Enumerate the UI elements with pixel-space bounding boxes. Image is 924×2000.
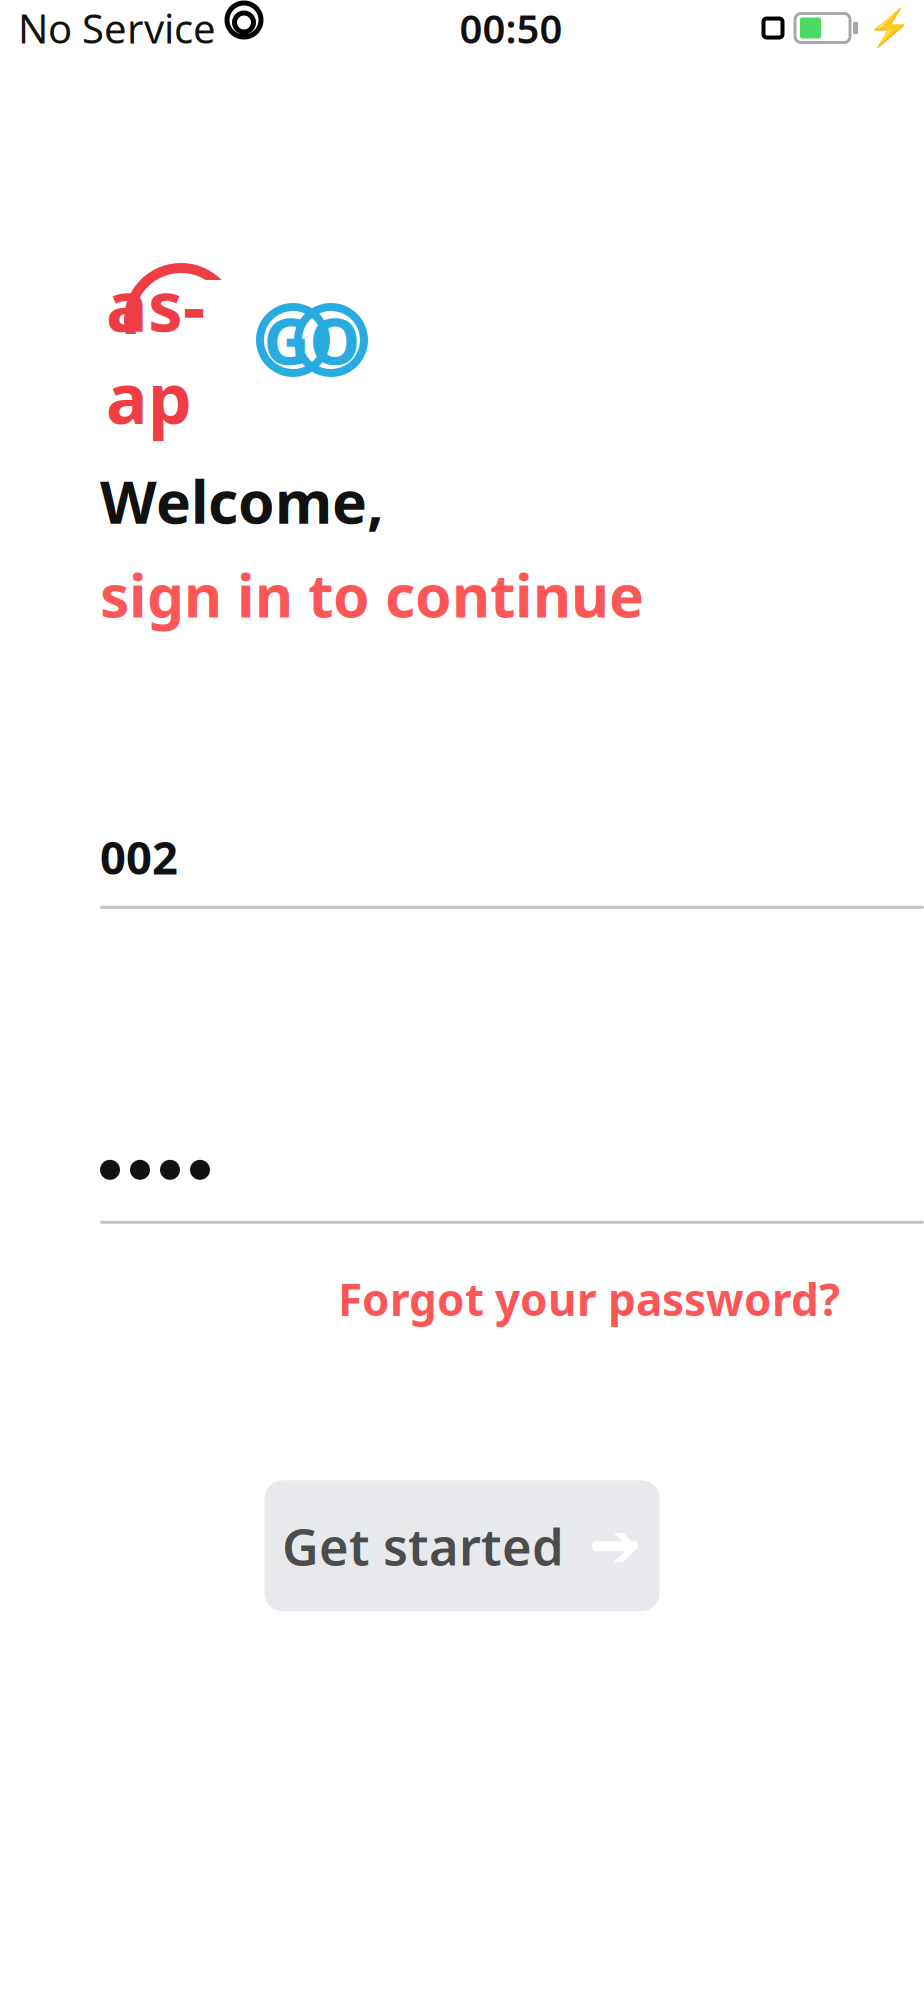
staticText: Get started [282,1512,564,1579]
staticText: GO [263,297,360,382]
staticText: No Service [18,1,216,54]
staticText: asap [106,259,205,443]
button[interactable]: Forgot your password? [334,1258,844,1340]
staticText: 002 [100,827,178,887]
staticText: ➔ [589,1511,640,1580]
button[interactable]: Get started [264,1480,659,1611]
staticText: ⚡ [867,7,912,48]
staticText: sign in to continue [100,556,644,634]
staticText: 00:50 [459,1,562,54]
staticText: Forgot your password? [338,1270,840,1328]
staticText: Welcome, [100,462,384,540]
